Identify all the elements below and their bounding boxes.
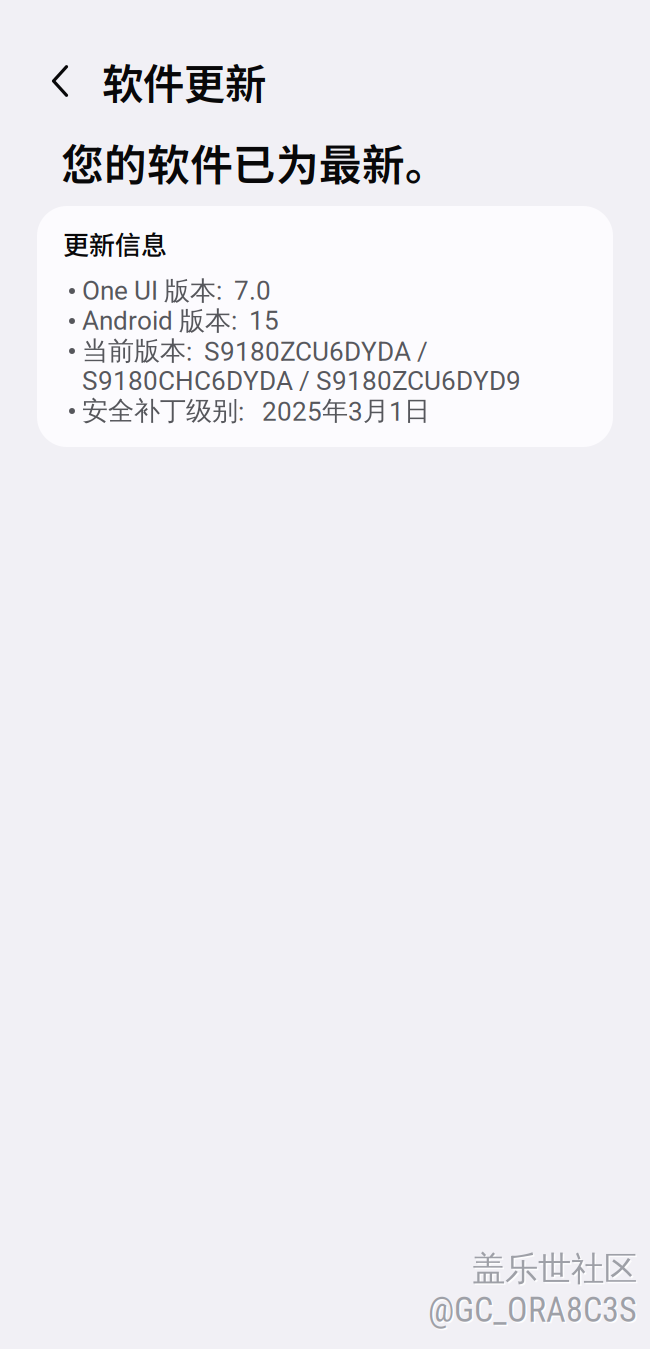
staticText: @GC_ORA8C3S <box>428 1290 637 1330</box>
staticText: 盖乐世社区 <box>473 1249 638 1291</box>
staticText: Android 版本: 15 <box>82 304 279 337</box>
staticText: S9180CHC6DYDA / S9180ZCU6DYD9 <box>82 366 521 396</box>
staticText: 更新信息 <box>63 225 167 262</box>
staticText: 安全补丁级别: 2025年3月1日 <box>82 394 430 427</box>
staticText: 盖乐世社区 <box>472 1248 637 1290</box>
staticText: @GC_ORA8C3S <box>429 1291 638 1331</box>
staticText: 当前版本: S9180ZCU6DYDA / <box>82 334 428 367</box>
staticText: One UI 版本: 7.0 <box>82 274 271 307</box>
button[interactable]: Back <box>38 59 82 103</box>
staticText: 软件更新 <box>102 51 266 111</box>
staticText: 您的软件已为最新。 <box>61 131 448 193</box>
